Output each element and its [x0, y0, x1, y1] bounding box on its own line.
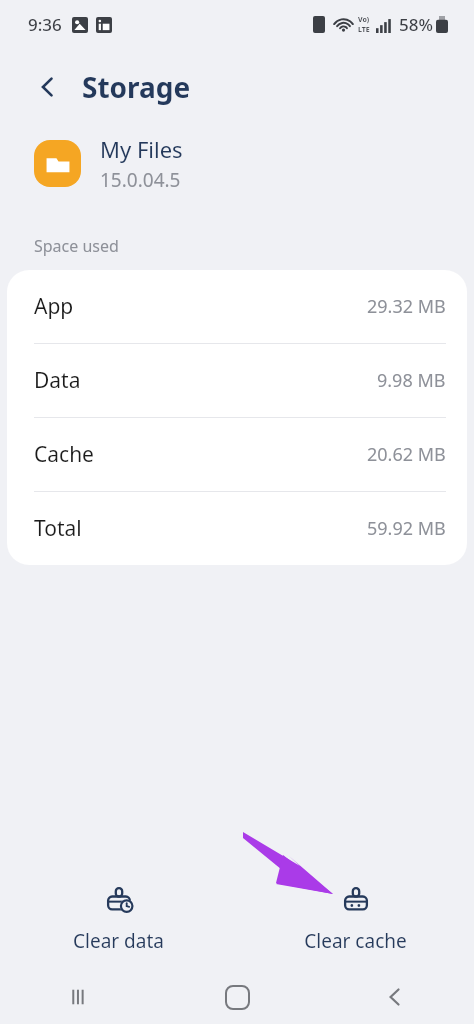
button[interactable]: Cache — [7, 418, 467, 491]
button[interactable]: Clear data — [0, 879, 237, 960]
button[interactable]: Home — [158, 970, 316, 1024]
button[interactable]: Total — [7, 492, 467, 565]
button[interactable]: Recents — [0, 970, 158, 1024]
staticText: 58% — [399, 13, 433, 36]
staticText: 9.98 MB — [377, 368, 446, 393]
staticText: 9:36 — [28, 13, 62, 36]
staticText: Clear data — [73, 928, 164, 954]
staticText: 59.92 MB — [367, 516, 446, 541]
staticText: Vo) — [358, 15, 370, 25]
staticText: Space used — [34, 235, 119, 257]
staticText: Data — [34, 366, 81, 395]
button[interactable]: Data — [7, 344, 467, 417]
staticText: 20.62 MB — [367, 442, 446, 467]
button[interactable]: Back — [316, 970, 474, 1024]
staticText: Total — [34, 514, 82, 543]
button[interactable]: App — [7, 270, 467, 343]
button[interactable]: Back — [26, 65, 70, 109]
staticText: 29.32 MB — [367, 294, 446, 319]
staticText: LTE — [358, 25, 370, 35]
staticText: Cache — [34, 440, 94, 469]
staticText: Storage — [82, 68, 191, 106]
staticText: App — [34, 292, 74, 321]
staticText: 15.0.04.5 — [100, 167, 181, 193]
staticText: Clear cache — [304, 928, 407, 954]
staticText: My Files — [100, 134, 183, 164]
button[interactable]: Clear cache — [237, 879, 474, 960]
